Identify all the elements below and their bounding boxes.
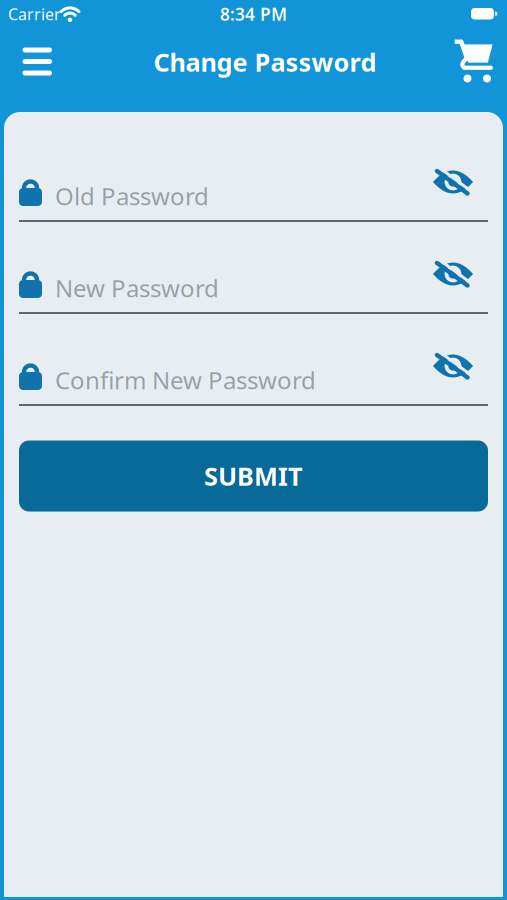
button[interactable]: Menu: [15, 39, 59, 83]
staticText: Old Password: [55, 180, 209, 212]
button[interactable]: SUBMIT: [19, 440, 488, 511]
button[interactable]: Show new password: [431, 252, 475, 296]
staticText: 8:34 PM: [220, 2, 287, 25]
button[interactable]: New Password: [0, 258, 507, 328]
button[interactable]: Cart: [448, 36, 498, 86]
button[interactable]: Confirm New Password: [0, 350, 507, 420]
button[interactable]: Show confirmed password: [431, 344, 475, 388]
staticText: New Password: [55, 272, 219, 304]
staticText: Change Password: [153, 45, 376, 79]
button[interactable]: Show old password: [431, 160, 475, 204]
staticText: Carrier: [8, 3, 61, 25]
staticText: Confirm New Password: [55, 364, 316, 396]
staticText: SUBMIT: [204, 459, 303, 493]
button[interactable]: Old Password: [0, 166, 507, 236]
